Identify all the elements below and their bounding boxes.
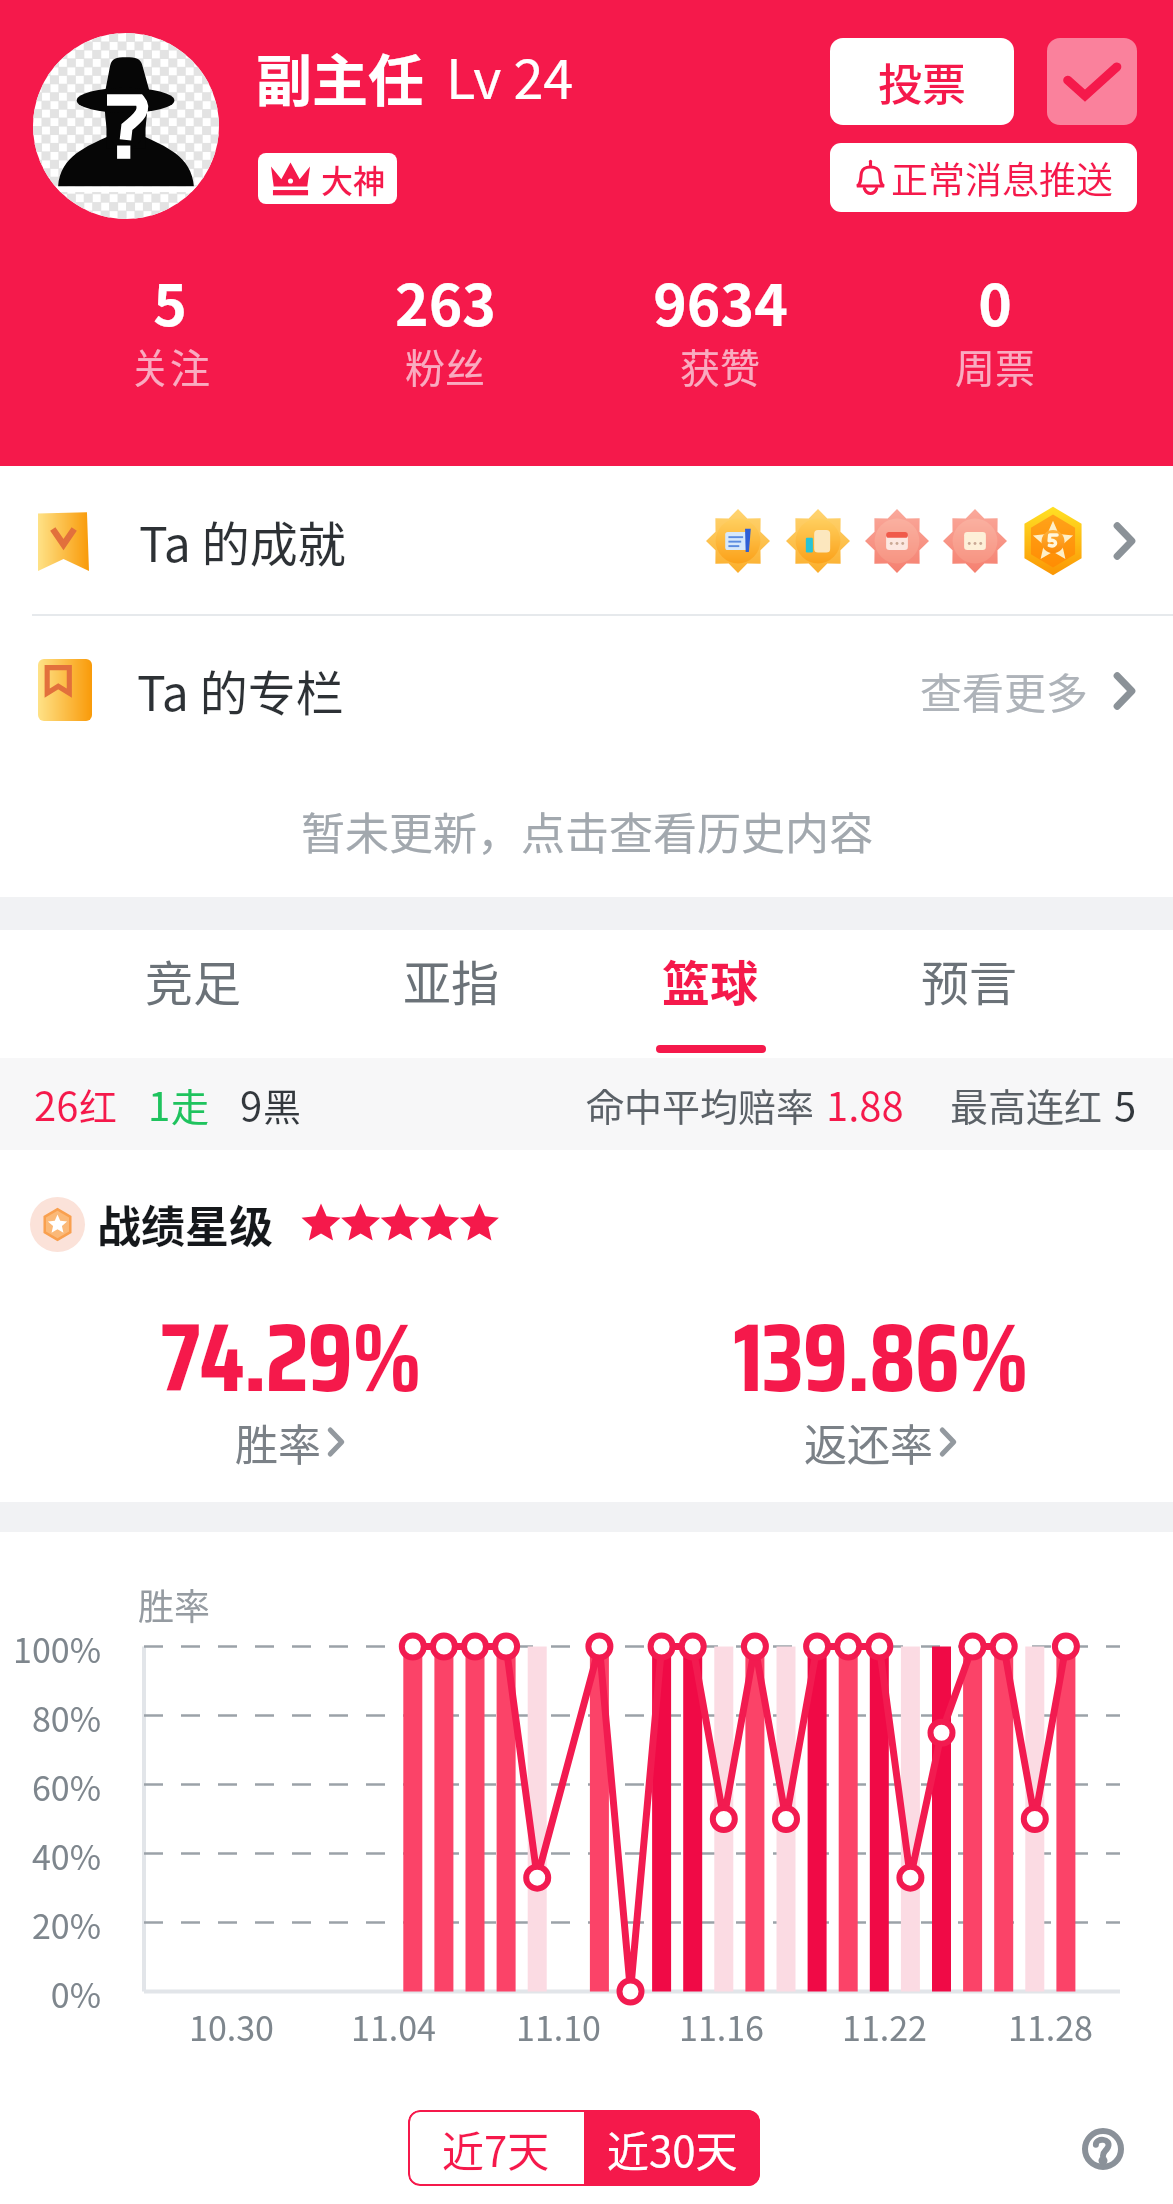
staticText: 周票 <box>955 337 1035 395</box>
staticText: 最高连红 <box>950 1077 1103 1132</box>
staticText: 战绩星级 <box>97 1192 273 1256</box>
staticText: 预言 <box>921 945 1018 1015</box>
button[interactable]: 预言 <box>840 930 1099 1058</box>
staticText: 竞足 <box>145 945 242 1015</box>
staticText: 100% <box>13 1624 101 1673</box>
staticText: 11.04 <box>351 2002 436 2051</box>
button[interactable]: 亚指 <box>322 930 581 1058</box>
button[interactable]: Help <box>1082 2128 1124 2170</box>
staticText: 9634 <box>653 260 788 343</box>
button[interactable]: 暂未更新，点击查看历史内容 <box>301 799 873 863</box>
staticText: 黑 <box>263 1077 302 1132</box>
button[interactable]: 投票 <box>830 38 1014 125</box>
staticText: 大神 <box>321 156 386 202</box>
button[interactable]: 263 <box>335 260 555 401</box>
staticText: 粉丝 <box>405 337 485 395</box>
button[interactable]: 5 <box>60 260 280 401</box>
button[interactable]: 近7天 <box>408 2110 584 2186</box>
staticText: 0 <box>978 260 1012 343</box>
staticText: 关注 <box>130 337 210 395</box>
staticText: 11.22 <box>842 2002 927 2051</box>
button[interactable]: 74.29% <box>90 1282 490 1495</box>
button[interactable]: 9634 <box>610 260 830 401</box>
staticText: 5 <box>1114 1075 1137 1133</box>
staticText: 11.10 <box>516 2002 601 2051</box>
button[interactable]: 近30天 <box>584 2110 760 2186</box>
staticText: 74.29% <box>160 1282 421 1433</box>
staticText: 20% <box>31 1900 101 1949</box>
staticText: 40% <box>31 1831 101 1880</box>
staticText: 11.28 <box>1008 2002 1093 2051</box>
staticText: 走 <box>171 1077 210 1132</box>
staticText: 命中平均赔率 <box>586 1077 815 1132</box>
staticText: 篮球 <box>662 945 759 1015</box>
button[interactable]: User avatar <box>33 33 219 219</box>
button[interactable]: Ta 的专栏 <box>0 615 1173 765</box>
staticText: 返还率 <box>804 1411 933 1473</box>
staticText: 正常消息推送 <box>891 151 1113 205</box>
button[interactable]: 正常消息推送 <box>830 143 1137 212</box>
staticText: Lv 24 <box>446 36 574 114</box>
staticText: 亚指 <box>403 945 500 1015</box>
staticText: Ta 的专栏 <box>137 655 344 725</box>
staticText: 胜率 <box>138 1578 211 1630</box>
staticText: 60% <box>31 1762 101 1811</box>
button[interactable]: 篮球 <box>581 930 840 1058</box>
staticText: Ta 的成就 <box>139 506 346 576</box>
staticText: 1.88 <box>826 1075 904 1133</box>
staticText: 获赞 <box>680 337 760 395</box>
staticText: 11.16 <box>679 2002 764 2051</box>
staticText: 80% <box>31 1693 101 1742</box>
staticText: 查看更多 <box>920 660 1089 721</box>
staticText: 近30天 <box>607 2118 738 2179</box>
staticText: 26 <box>34 1075 79 1133</box>
staticText: 胜率 <box>235 1411 321 1473</box>
button[interactable]: Ta 的成就 <box>0 466 1173 615</box>
staticText: 近7天 <box>442 2118 550 2179</box>
button[interactable]: 竞足 <box>64 930 322 1058</box>
button[interactable]: 大神 <box>258 153 397 204</box>
staticText: 9 <box>240 1075 263 1133</box>
button[interactable]: Following <box>1047 38 1137 125</box>
staticText: 投票 <box>878 50 966 114</box>
button[interactable]: 139.86% <box>680 1282 1080 1495</box>
staticText: 0% <box>50 1969 101 2018</box>
staticText: 5 <box>153 260 187 343</box>
staticText: 1 <box>148 1075 171 1133</box>
staticText: 139.86% <box>733 1282 1028 1433</box>
staticText: 红 <box>79 1077 118 1132</box>
staticText: 10.30 <box>189 2002 274 2051</box>
staticText: 副主任 <box>256 36 424 117</box>
button[interactable]: 0 <box>885 260 1105 401</box>
staticText: 263 <box>395 260 496 343</box>
